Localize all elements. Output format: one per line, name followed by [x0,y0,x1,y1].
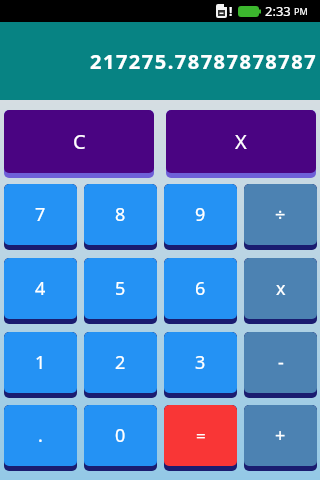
button[interactable]: . [4,405,77,471]
staticText: 1 [35,350,46,375]
staticText: C [73,128,86,155]
staticText: 217275.78787878787 [90,48,318,75]
button[interactable]: 4 [4,258,77,324]
staticText: ÷ [275,202,286,227]
staticText: X [235,128,247,155]
button[interactable]: = [164,405,237,471]
staticText: 7 [35,202,46,227]
staticText: = [196,424,206,447]
button[interactable]: + [244,405,317,471]
button[interactable]: 7 [4,184,77,250]
staticText: PM [294,5,308,17]
button[interactable]: 1 [4,332,77,398]
staticText: ! [229,3,233,19]
button[interactable]: C [4,110,154,178]
staticText: 8 [115,202,126,227]
staticText: 5 [115,276,126,301]
staticText: + [275,423,286,448]
button[interactable]: X [166,110,316,178]
button[interactable]: 3 [164,332,237,398]
button[interactable]: 5 [84,258,157,324]
staticText: 9 [195,202,206,227]
staticText: 2:33 [265,2,291,20]
staticText: 3 [195,350,206,375]
button[interactable]: 6 [164,258,237,324]
button[interactable]: 0 [84,405,157,471]
staticText: 4 [35,276,46,301]
button[interactable]: 8 [84,184,157,250]
button[interactable]: 9 [164,184,237,250]
staticText: . [38,423,43,448]
button[interactable]: 2 [84,332,157,398]
button[interactable]: ÷ [244,184,317,250]
staticText: 2 [115,350,126,375]
staticText: 6 [195,276,206,301]
staticText: - [278,350,284,375]
staticText: 0 [115,423,126,448]
button[interactable]: x [244,258,317,324]
button[interactable]: - [244,332,317,398]
staticText: x [276,276,286,301]
